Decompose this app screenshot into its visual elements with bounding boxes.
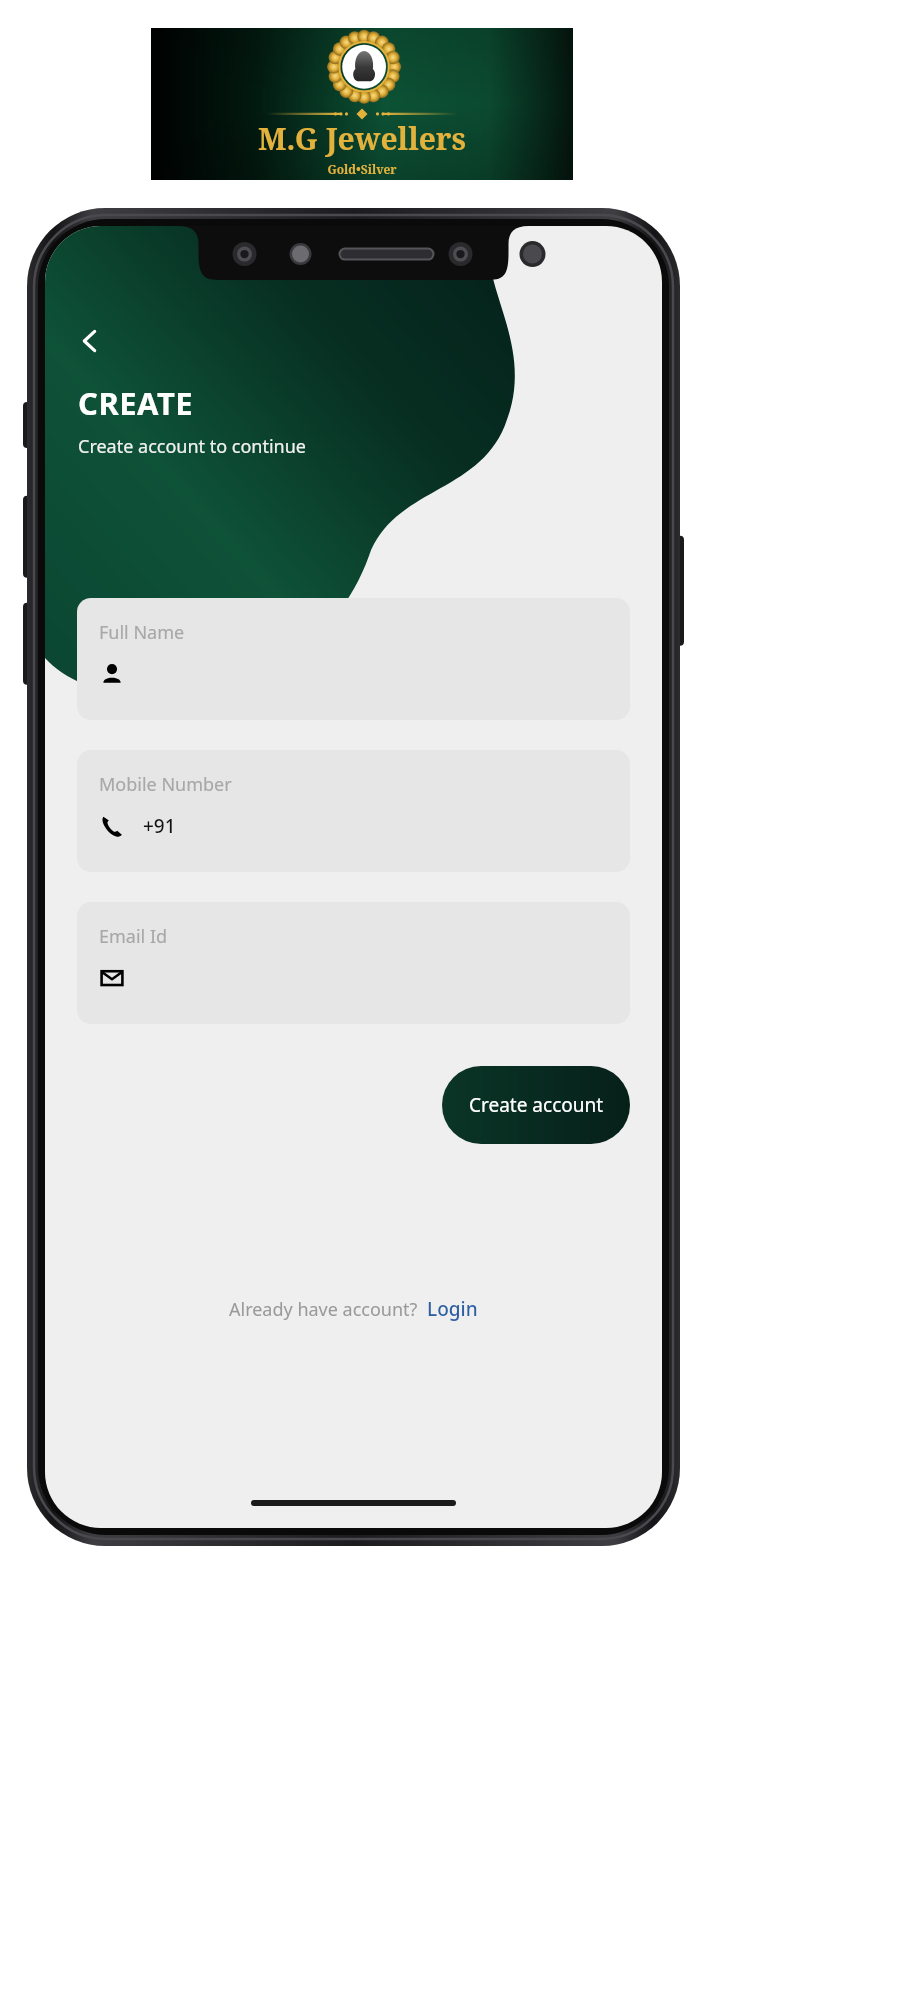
staticText: Email Id — [99, 924, 168, 949]
staticText: CREATE — [78, 382, 194, 424]
staticText: Mobile Number — [99, 772, 232, 797]
staticText: Already have account? — [229, 1297, 427, 1322]
button[interactable]: Full Name — [77, 598, 630, 720]
button[interactable]: Email Id — [77, 902, 630, 1024]
button[interactable]: Create account — [442, 1066, 630, 1144]
staticText: Create account to continue — [78, 434, 306, 459]
staticText: +91 — [143, 813, 176, 839]
staticText: Gold•Silver — [327, 161, 397, 177]
button[interactable]: Back — [67, 318, 113, 364]
button[interactable]: Mobile Number — [77, 750, 630, 872]
button[interactable]: Login — [427, 1296, 478, 1322]
staticText: Login — [427, 1296, 478, 1322]
staticText: Full Name — [99, 620, 185, 645]
staticText: Create account — [469, 1092, 604, 1118]
staticText: M.G Jewellers — [258, 118, 466, 159]
